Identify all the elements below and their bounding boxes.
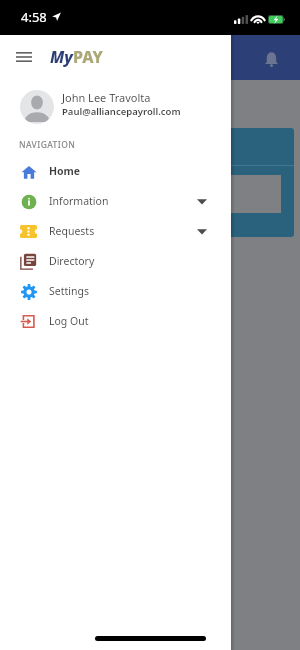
button[interactable]: Notifications — [258, 46, 284, 72]
staticText: Directory — [49, 254, 95, 268]
staticText: NAVIGATION — [19, 139, 76, 151]
staticText: Settings — [49, 284, 89, 298]
staticText: Log Out — [49, 314, 89, 328]
staticText: PAY — [73, 46, 103, 68]
staticText: Paul@alliancepayroll.com — [62, 105, 181, 118]
button[interactable]: John Lee Travolta — [0, 80, 231, 134]
button[interactable]: Directory — [0, 246, 231, 276]
button[interactable]: Information — [0, 186, 231, 216]
staticText: Requests — [49, 224, 95, 238]
staticText: My — [50, 46, 73, 68]
button[interactable]: Menu — [8, 41, 40, 73]
staticText: 4:58 — [21, 8, 47, 26]
staticText: Home — [49, 164, 81, 178]
button[interactable]: Log Out — [0, 306, 231, 336]
button[interactable]: Requests — [0, 216, 231, 246]
staticText: Information — [49, 194, 109, 208]
button[interactable]: Home — [0, 156, 231, 186]
button[interactable]: Settings — [0, 276, 231, 306]
staticText: John Lee Travolta — [62, 90, 151, 105]
